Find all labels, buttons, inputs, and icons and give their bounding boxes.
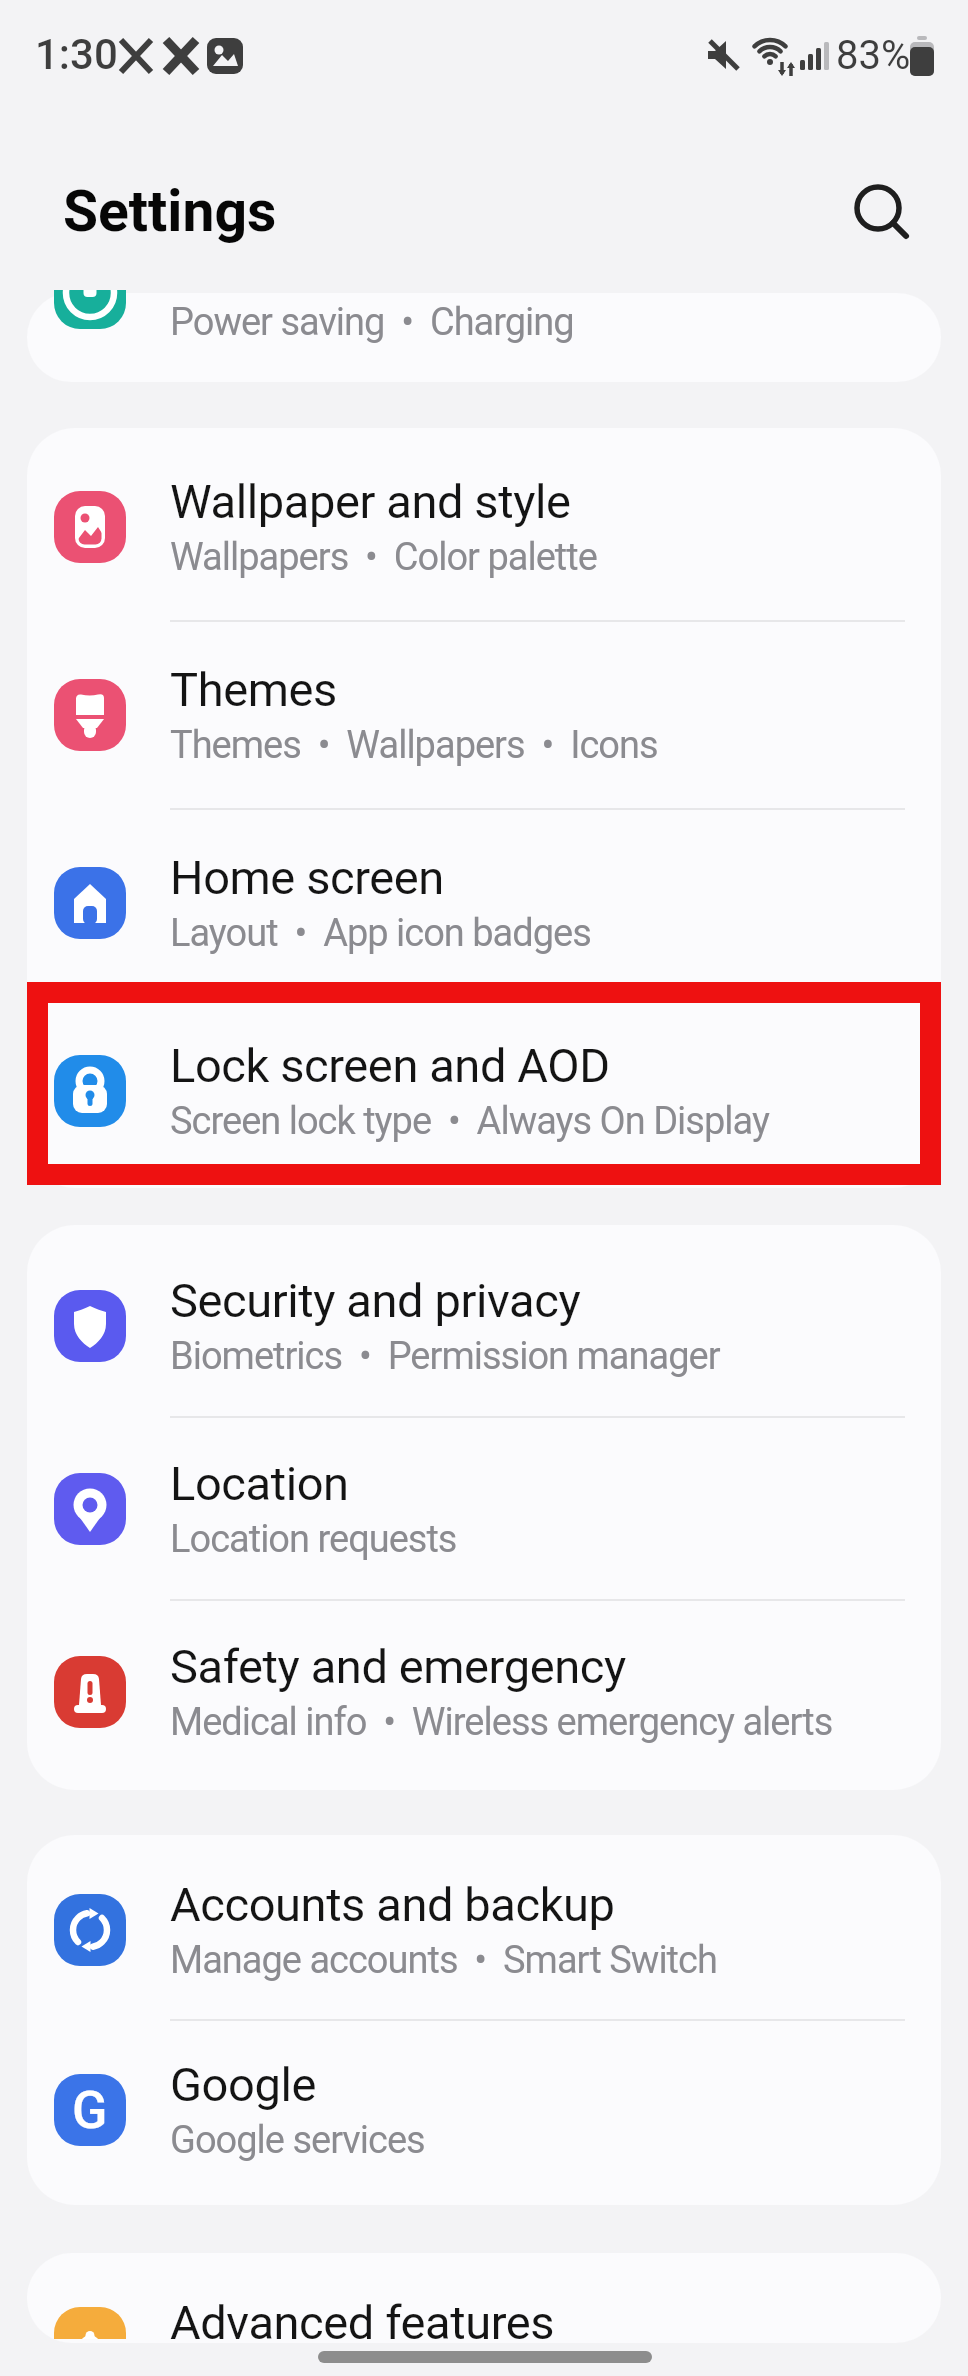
staticText: Google (170, 2057, 316, 2112)
staticText: Power saving • Charging (170, 300, 574, 345)
button[interactable]: Location (27, 1418, 941, 1599)
staticText: Safety and emergency (170, 1639, 626, 1694)
staticText: Themes (170, 662, 337, 717)
button[interactable]: Advanced features (27, 2253, 941, 2343)
staticText: G (72, 2080, 108, 2141)
staticText: 83% (836, 32, 911, 79)
button[interactable]: Security and privacy (27, 1235, 941, 1416)
staticText: Accounts and backup (170, 1877, 615, 1932)
button[interactable]: Home screen (27, 810, 941, 996)
staticText: Google services (170, 2118, 425, 2163)
staticText: Screen lock type • Always On Display (170, 1099, 769, 1144)
staticText: Lock screen and AOD (170, 1038, 610, 1093)
staticText: Wallpaper and style (170, 474, 571, 529)
staticText: Manage accounts • Smart Switch (170, 1938, 717, 1983)
staticText: Location requests (170, 1517, 457, 1562)
button[interactable]: Wallpaper and style (27, 434, 941, 620)
button[interactable]: Accounts and backup (27, 1841, 941, 2019)
staticText: Biometrics • Permission manager (170, 1334, 720, 1379)
button[interactable]: Themes (27, 622, 941, 808)
button[interactable]: Safety and emergency (27, 1601, 941, 1782)
staticText: Location (170, 1456, 349, 1511)
staticText: Home screen (170, 850, 444, 905)
staticText: Wallpapers • Color palette (170, 535, 597, 580)
button[interactable] (846, 176, 922, 252)
staticText: 1:30 (35, 30, 118, 79)
button[interactable]: G (27, 2021, 941, 2199)
staticText: Medical info • Wireless emergency alerts (170, 1700, 833, 1745)
staticText: Advanced features (170, 2295, 555, 2343)
staticText: Themes • Wallpapers • Icons (170, 723, 658, 768)
staticText: Settings (63, 178, 277, 245)
staticText: Security and privacy (170, 1273, 581, 1328)
button[interactable]: Lock screen and AOD (27, 998, 941, 1184)
button[interactable]: Power saving • Charging (27, 293, 941, 382)
staticText: Layout • App icon badges (170, 911, 591, 956)
